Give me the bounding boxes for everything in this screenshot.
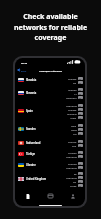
staticText: 5G xyxy=(79,125,82,127)
staticText: Sunrise xyxy=(68,140,77,143)
staticText: 5G xyxy=(79,78,82,80)
staticText: O2 xyxy=(73,180,77,183)
button[interactable]: United Kingdom xyxy=(15,170,85,188)
staticText: Telemach xyxy=(66,96,77,99)
staticText: United Kingdom xyxy=(26,177,47,181)
staticText: A1 xyxy=(74,92,77,95)
staticText: Spain xyxy=(26,109,33,113)
staticText: 5G xyxy=(79,89,82,91)
staticText: Türkiye xyxy=(26,152,36,156)
staticText: 5G xyxy=(79,129,82,131)
button[interactable]: Slovakia xyxy=(15,74,85,85)
staticText: 5G xyxy=(79,156,82,158)
staticText: Vodafone xyxy=(66,176,77,179)
staticText: Salt xyxy=(72,144,77,147)
staticText: 5G xyxy=(79,93,82,95)
staticText: Tele2 xyxy=(71,128,77,131)
staticText: 5G xyxy=(79,173,82,175)
staticText: Sweden xyxy=(26,127,36,131)
button[interactable]: Back xyxy=(17,68,27,72)
staticText: Switzerland xyxy=(26,141,41,145)
button[interactable]: My eSIMs xyxy=(40,190,60,202)
button[interactable]: Switzerland xyxy=(15,137,85,148)
staticText: 5G xyxy=(79,133,82,135)
staticText: 5G xyxy=(79,109,82,111)
staticText: Vodafone xyxy=(66,155,77,158)
staticText: Orange xyxy=(68,77,77,80)
staticText: Three xyxy=(70,184,77,187)
staticText: Vodafone xyxy=(66,166,77,169)
staticText: Telia xyxy=(71,124,77,127)
staticText: 4G xyxy=(79,167,82,169)
staticText: 5G xyxy=(79,82,82,84)
button[interactable]: Türkiye xyxy=(15,148,85,159)
staticText: Slovakia xyxy=(26,78,37,82)
staticText: Slovenia xyxy=(26,91,37,95)
button[interactable]: Ukraine xyxy=(15,159,85,170)
staticText: 4G xyxy=(79,163,82,165)
staticText: Available networks xyxy=(39,69,62,72)
staticText: EE xyxy=(74,172,77,175)
staticText: 5G xyxy=(79,145,82,147)
staticText: Mobitel xyxy=(68,88,77,91)
staticText: 5G xyxy=(79,105,82,107)
staticText: 5G xyxy=(79,97,82,99)
button[interactable]: Shop xyxy=(18,190,38,202)
staticText: Back xyxy=(21,69,27,72)
staticText: 5G xyxy=(79,152,82,154)
staticText: Movistar xyxy=(67,112,77,115)
button[interactable]: Profile xyxy=(63,190,83,202)
button[interactable]: Slovenia xyxy=(15,85,85,101)
staticText: Vodafone xyxy=(66,104,77,107)
staticText: 5G xyxy=(79,113,82,115)
staticText: Yoigo xyxy=(70,116,77,119)
staticText: 5G xyxy=(79,181,82,183)
staticText: 4G xyxy=(79,117,82,119)
staticText: Ukraine xyxy=(26,163,36,167)
staticText: Kyivstar xyxy=(68,162,77,165)
button[interactable]: Sweden xyxy=(15,121,85,137)
staticText: 20:16 xyxy=(21,61,28,64)
staticText: O2 xyxy=(73,81,77,84)
staticText: Turkcell xyxy=(68,151,77,154)
staticText: Orange xyxy=(68,108,77,111)
staticText: Check available networks for reliable co… xyxy=(0,12,101,42)
button[interactable]: Spain xyxy=(15,101,85,121)
staticText: 5G xyxy=(79,177,82,179)
staticText: 5G xyxy=(79,141,82,143)
staticText: 5G xyxy=(79,185,82,187)
staticText: Tre xyxy=(73,132,77,135)
